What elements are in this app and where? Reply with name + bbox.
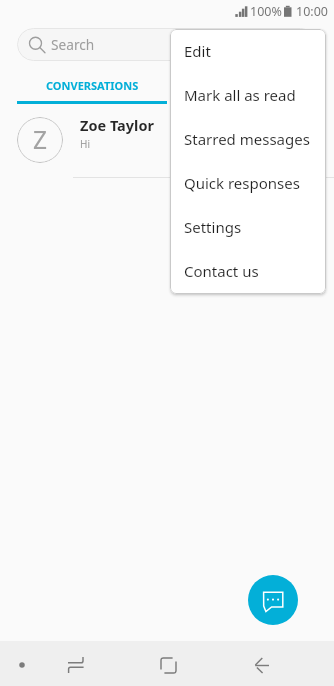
staticText: Starred messages: [184, 129, 310, 149]
button[interactable]: CONVERSATIONS: [17, 61, 167, 104]
staticText: Hi: [80, 137, 90, 151]
staticText: Quick responses: [184, 173, 300, 193]
button[interactable]: More options: [8, 651, 36, 679]
staticText: Mark all as read: [184, 85, 296, 105]
button[interactable]: Edit: [170, 29, 326, 73]
staticText: 10:00: [296, 3, 328, 20]
staticText: CONVERSATIONS: [46, 78, 139, 93]
staticText: Z: [33, 123, 48, 156]
staticText: Settings: [184, 217, 242, 237]
button[interactable]: Settings: [170, 205, 326, 249]
button[interactable]: Mark all as read: [170, 73, 326, 117]
button[interactable]: Home: [150, 647, 186, 683]
staticText: Zoe Taylor: [80, 115, 154, 135]
button[interactable]: Recent apps: [57, 647, 93, 683]
staticText: Edit: [184, 41, 211, 61]
button[interactable]: Search: [17, 28, 317, 61]
staticText: Contact us: [184, 261, 259, 281]
button[interactable]: Z: [0, 104, 334, 177]
button[interactable]: Contact us: [170, 249, 326, 293]
staticText: 100%: [250, 3, 282, 20]
button[interactable]: Quick responses: [170, 161, 326, 205]
staticText: Search: [51, 35, 95, 54]
button[interactable]: New conversation: [248, 575, 298, 625]
button[interactable]: Back: [244, 647, 280, 683]
button[interactable]: Starred messages: [170, 117, 326, 161]
